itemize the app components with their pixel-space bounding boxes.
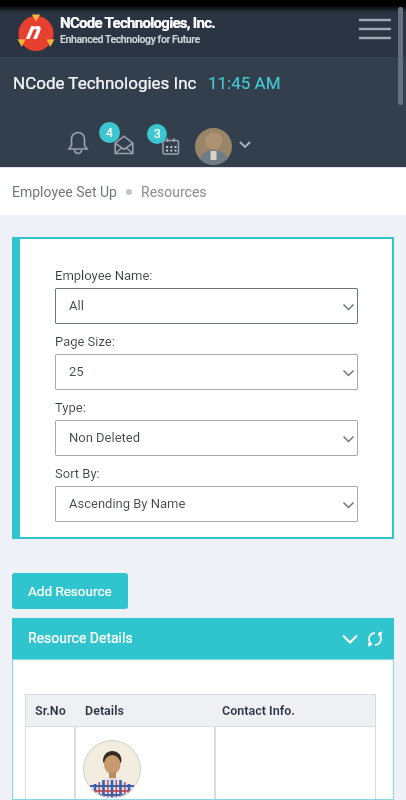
button[interactable]: All	[55, 288, 358, 324]
staticText: Resources	[141, 184, 207, 200]
button[interactable]: 4	[99, 122, 139, 162]
button[interactable]: Non Deleted	[55, 420, 358, 456]
staticText: Add Resource	[28, 583, 112, 599]
staticText: Resource Details	[28, 630, 133, 646]
staticText: Contact Info.	[222, 703, 295, 718]
staticText: Page Size:	[55, 334, 115, 349]
staticText: Type:	[55, 400, 86, 415]
staticText: Sr.No	[35, 703, 66, 718]
staticText: 11:45 AM	[208, 73, 281, 93]
staticText: 25	[69, 364, 84, 379]
staticText: Sort By:	[55, 466, 100, 481]
staticText: All	[69, 298, 84, 313]
button[interactable]: Employee Set Up	[12, 184, 117, 200]
button[interactable]: Resource Details	[12, 618, 394, 659]
staticText: n	[26, 17, 40, 45]
staticText: 4	[106, 126, 113, 140]
staticText: Ascending By Name	[69, 496, 186, 511]
button[interactable]	[355, 16, 395, 44]
button[interactable]: 25	[55, 354, 358, 390]
staticText: Non Deleted	[69, 430, 141, 445]
staticText: Enhanced Technology for Future	[60, 33, 200, 45]
staticText: Details	[85, 703, 124, 718]
button[interactable]: Add Resource	[12, 573, 128, 609]
staticText: NCode Technologies, Inc.	[60, 14, 216, 32]
staticText: Employee Name:	[55, 268, 153, 283]
button[interactable]: 3	[147, 122, 185, 162]
staticText: 3	[154, 127, 161, 141]
button[interactable]: Ascending By Name	[55, 486, 358, 522]
staticText: NCode Technologies Inc	[13, 73, 197, 93]
button[interactable]	[65, 130, 91, 160]
button[interactable]	[195, 128, 232, 165]
